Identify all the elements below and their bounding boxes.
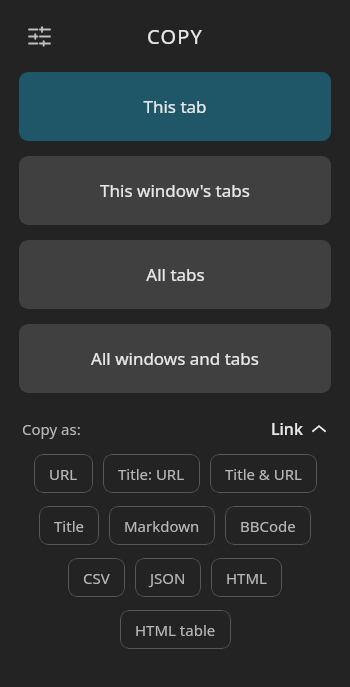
button[interactable]: Settings — [22, 19, 56, 53]
button[interactable]: BBCode — [225, 506, 311, 545]
staticText: HTML — [226, 568, 267, 588]
button[interactable]: HTML table — [120, 610, 231, 649]
button[interactable]: JSON — [135, 558, 201, 597]
staticText: All windows and tabs — [91, 347, 259, 370]
button[interactable]: HTML — [211, 558, 282, 597]
button[interactable]: CSV — [68, 558, 125, 597]
button[interactable]: All tabs — [19, 240, 331, 309]
button[interactable]: This tab — [19, 72, 331, 141]
staticText: BBCode — [240, 516, 296, 536]
staticText: HTML table — [135, 620, 216, 640]
staticText: All tabs — [146, 263, 205, 286]
button[interactable]: Title — [39, 506, 99, 545]
staticText: URL — [49, 464, 78, 484]
staticText: This tab — [143, 95, 207, 118]
staticText: Link — [271, 418, 303, 440]
button[interactable]: Markdown — [109, 506, 215, 545]
button[interactable]: All windows and tabs — [19, 324, 331, 393]
staticText: This window's tabs — [100, 179, 250, 202]
button[interactable]: Link — [269, 416, 328, 442]
staticText: Markdown — [124, 516, 200, 536]
staticText: CSV — [83, 568, 110, 588]
staticText: COPY — [147, 23, 204, 50]
button[interactable]: Title & URL — [210, 454, 317, 493]
staticText: JSON — [150, 568, 186, 588]
button[interactable]: URL — [34, 454, 93, 493]
staticText: Copy as: — [22, 419, 81, 439]
staticText: Title & URL — [225, 464, 302, 484]
staticText: Title: URL — [118, 464, 185, 484]
staticText: Title — [54, 516, 84, 536]
button[interactable]: Title: URL — [103, 454, 200, 493]
button[interactable]: This window's tabs — [19, 156, 331, 225]
